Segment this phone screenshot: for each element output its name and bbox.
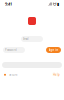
staticText: Help <box>53 73 60 76</box>
staticText: 9:41 <box>5 1 12 7</box>
staticText: Email <box>23 37 29 41</box>
staticText: Password <box>5 48 17 52</box>
button[interactable]: Sign in <box>46 47 61 53</box>
staticText: Sign in <box>48 48 58 52</box>
staticText: .ıll ᗢ ▮ <box>48 1 59 7</box>
staticText: Secure <box>9 73 18 76</box>
